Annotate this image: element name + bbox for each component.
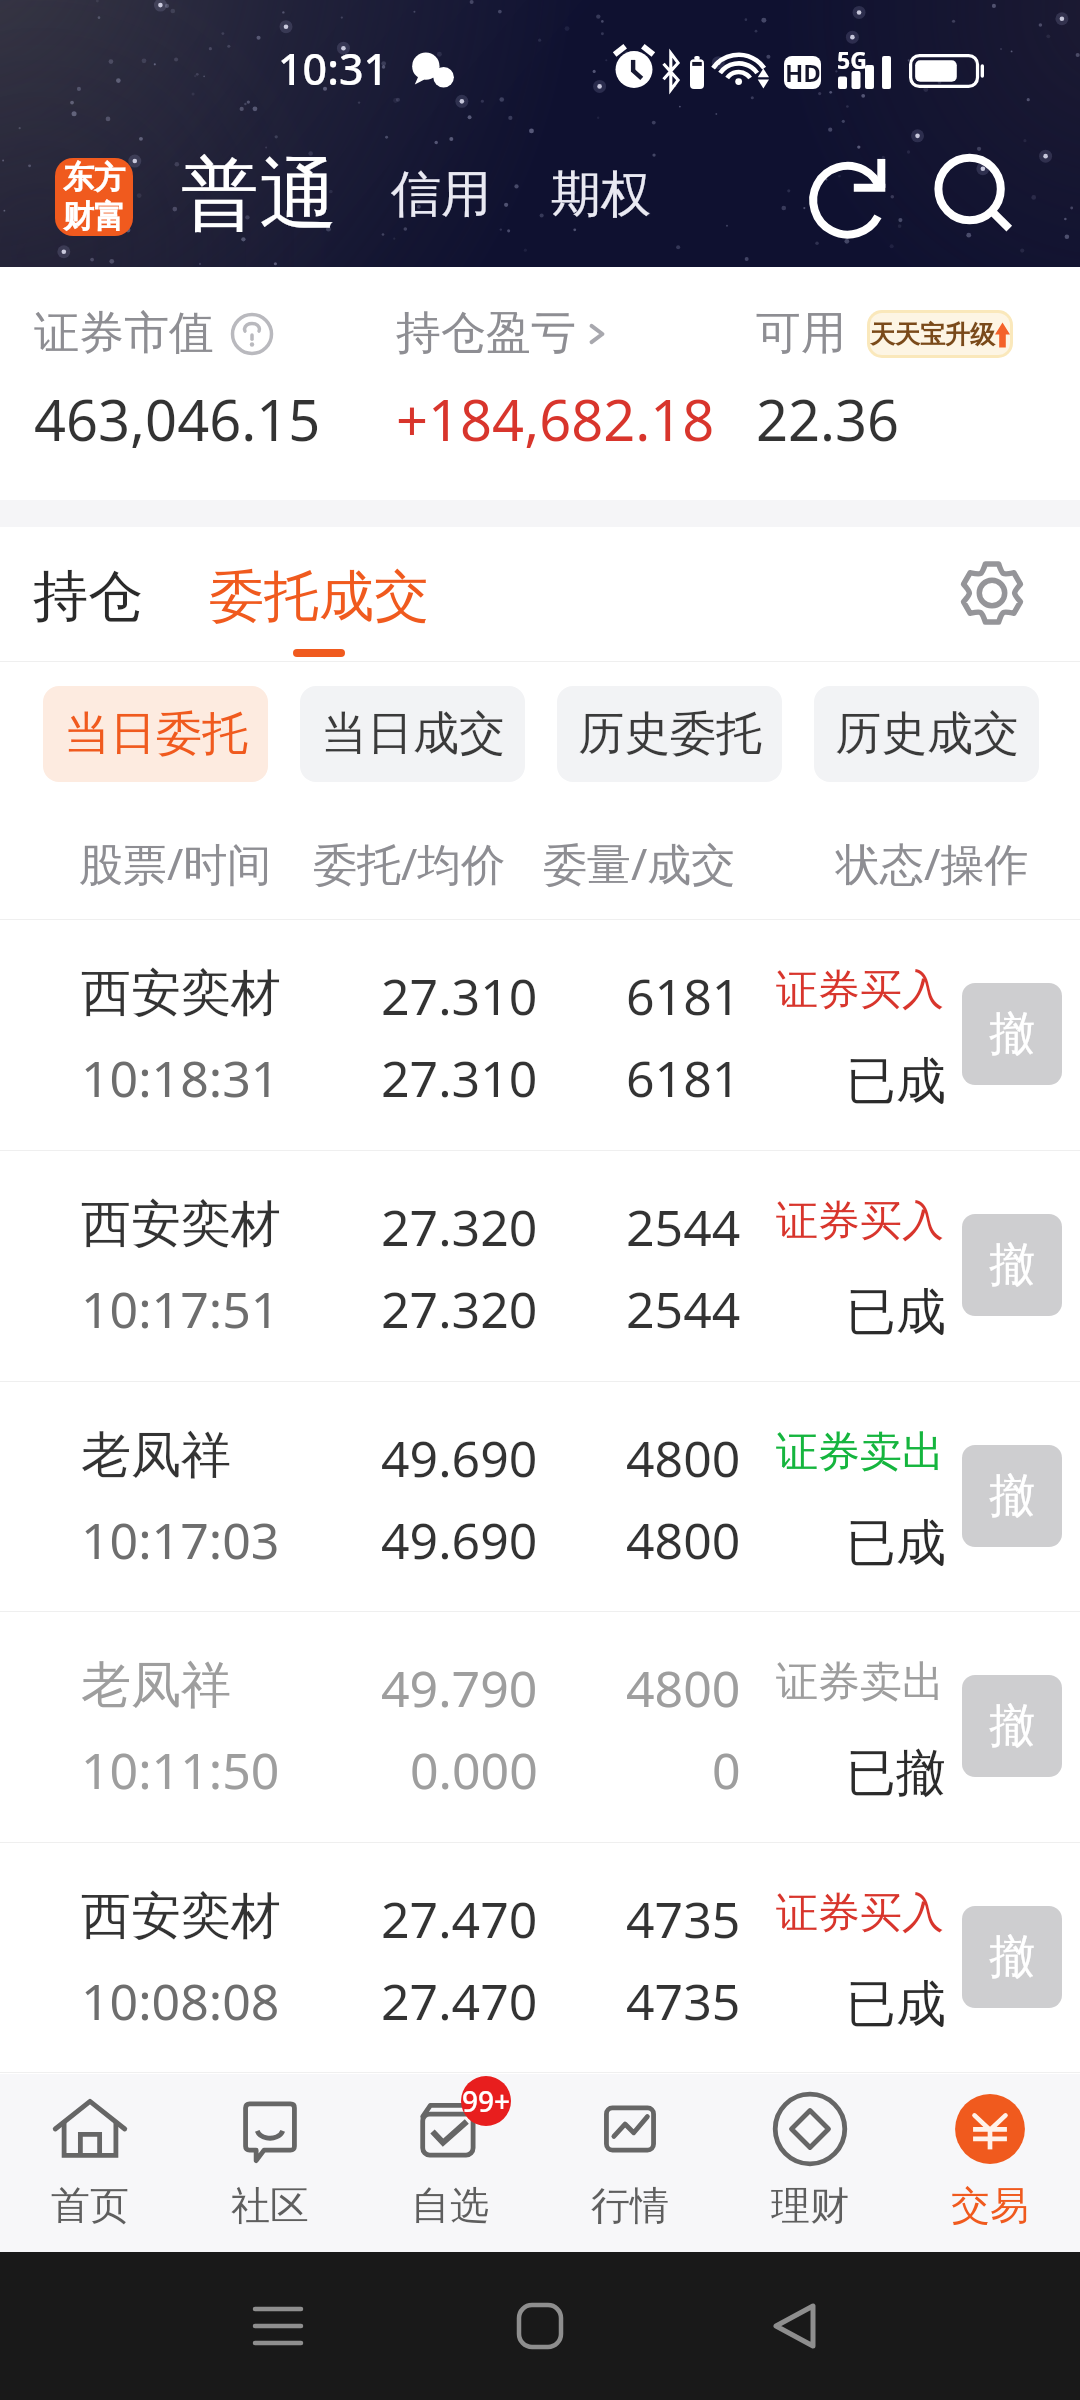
button[interactable]: 老凤祥 bbox=[0, 1382, 1080, 1612]
button[interactable]: 持仓 bbox=[32, 527, 144, 662]
staticText: 10:08:08 bbox=[81, 1967, 280, 2035]
button[interactable]: 撤单 bbox=[962, 1675, 1062, 1777]
staticText: 463,046.15 bbox=[34, 381, 321, 457]
staticText: 27.470 bbox=[381, 1967, 538, 2035]
staticText: 撤 bbox=[989, 1928, 1035, 1986]
staticText: 自选 bbox=[411, 2181, 489, 2230]
button[interactable]: 社区 bbox=[180, 2074, 360, 2252]
staticText: 4800 bbox=[626, 1424, 741, 1492]
staticText: 4800 bbox=[626, 1654, 741, 1722]
staticText: 持仓 bbox=[33, 562, 143, 631]
staticText: 0 bbox=[712, 1736, 741, 1804]
staticText: 西安奕材 bbox=[81, 1193, 281, 1256]
staticText: 10:18:31 bbox=[81, 1044, 280, 1112]
button[interactable]: 撤单 bbox=[962, 1214, 1062, 1316]
button[interactable]: 首页 bbox=[0, 2074, 180, 2252]
button[interactable]: 期权 bbox=[545, 122, 657, 267]
button[interactable]: 委托成交 bbox=[208, 527, 430, 662]
button[interactable]: 历史成交 bbox=[814, 686, 1039, 782]
staticText: 4735 bbox=[626, 1885, 741, 1953]
staticText: 股票/时间 bbox=[79, 833, 272, 893]
staticText: 99+ bbox=[462, 2082, 511, 2120]
staticText: 10:17:51 bbox=[81, 1275, 280, 1343]
button[interactable]: Refresh bbox=[790, 122, 910, 267]
button[interactable]: 证券市值 bbox=[34, 305, 274, 362]
staticText: 49.790 bbox=[381, 1654, 538, 1722]
button[interactable]: 99+ bbox=[360, 2074, 540, 2252]
button[interactable]: Home bbox=[490, 2252, 590, 2400]
staticText: 委量/成交 bbox=[543, 833, 736, 893]
staticText: 撤 bbox=[989, 1236, 1035, 1294]
button[interactable]: East Money bbox=[55, 158, 133, 236]
staticText: 西安奕材 bbox=[81, 1885, 281, 1948]
button[interactable]: 撤单 bbox=[962, 1445, 1062, 1547]
staticText: 27.320 bbox=[381, 1193, 538, 1261]
staticText: 交易 bbox=[951, 2181, 1029, 2230]
button[interactable]: Settings bbox=[946, 527, 1038, 662]
staticText: 东方 bbox=[63, 158, 125, 197]
button[interactable]: 普通 bbox=[170, 122, 348, 267]
staticText: 委托/均价 bbox=[313, 833, 506, 893]
staticText: 已成 bbox=[846, 1973, 946, 2036]
staticText: 4800 bbox=[626, 1506, 741, 1574]
staticText: 撤 bbox=[989, 1697, 1035, 1755]
staticText: 已成 bbox=[846, 1281, 946, 1344]
staticText: 已撤 bbox=[846, 1742, 946, 1805]
staticText: 10:31 bbox=[278, 39, 389, 98]
staticText: 49.690 bbox=[381, 1506, 538, 1574]
button[interactable]: 西安奕材 bbox=[0, 920, 1080, 1151]
staticText: 已成 bbox=[846, 1050, 946, 1113]
button[interactable]: 行情 bbox=[540, 2074, 720, 2252]
staticText: 理财 bbox=[771, 2181, 849, 2230]
staticText: 当日委托 bbox=[64, 705, 248, 763]
button[interactable]: 当日委托 bbox=[43, 686, 268, 782]
staticText: 证券买入 bbox=[776, 1887, 944, 1940]
staticText: 社区 bbox=[231, 2181, 309, 2230]
staticText: 证券卖出 bbox=[776, 1426, 944, 1479]
button[interactable]: 老凤祥 bbox=[0, 1612, 1080, 1843]
button[interactable]: 理财 bbox=[720, 2074, 900, 2252]
button[interactable]: 交易 bbox=[900, 2074, 1080, 2252]
staticText: 撤 bbox=[989, 1005, 1035, 1063]
staticText: 已成 bbox=[846, 1512, 946, 1575]
staticText: 老凤祥 bbox=[81, 1654, 231, 1717]
button[interactable]: 历史委托 bbox=[557, 686, 782, 782]
staticText: 证券市值 bbox=[34, 305, 214, 362]
button[interactable]: Recents bbox=[228, 2252, 328, 2400]
button[interactable]: 撤单 bbox=[962, 983, 1062, 1085]
button[interactable]: 当日成交 bbox=[300, 686, 525, 782]
button[interactable]: 西安奕材 bbox=[0, 1151, 1080, 1382]
button[interactable]: 信用 bbox=[385, 122, 497, 267]
staticText: 2544 bbox=[626, 1193, 741, 1261]
staticText: 普通 bbox=[181, 146, 337, 244]
button[interactable]: Search bbox=[916, 122, 1036, 267]
staticText: HD bbox=[785, 56, 821, 89]
staticText: 27.310 bbox=[381, 962, 538, 1030]
staticText: 6181 bbox=[626, 962, 741, 1030]
staticText: 天天宝升级 bbox=[870, 319, 995, 350]
staticText: 撤 bbox=[989, 1467, 1035, 1525]
button[interactable]: 持仓盈亏 bbox=[396, 305, 614, 362]
staticText: 历史委托 bbox=[578, 705, 762, 763]
staticText: 信用 bbox=[391, 163, 491, 226]
staticText: 6181 bbox=[626, 1044, 741, 1112]
staticText: 证券买入 bbox=[776, 1195, 944, 1248]
button[interactable]: Back bbox=[744, 2252, 844, 2400]
staticText: 财富 bbox=[63, 197, 125, 236]
button[interactable]: 天天宝升级 bbox=[870, 313, 1010, 355]
staticText: 状态/操作 bbox=[836, 833, 1029, 893]
staticText: 老凤祥 bbox=[81, 1424, 231, 1487]
staticText: 27.310 bbox=[381, 1044, 538, 1112]
staticText: 4735 bbox=[626, 1967, 741, 2035]
staticText: 证券买入 bbox=[776, 964, 944, 1017]
button[interactable]: 西安奕材 bbox=[0, 1843, 1080, 2073]
staticText: 22.36 bbox=[756, 381, 900, 457]
staticText: 0.000 bbox=[410, 1736, 538, 1804]
staticText: 2544 bbox=[626, 1275, 741, 1343]
button[interactable]: 撤单 bbox=[962, 1906, 1062, 2008]
staticText: 可用 bbox=[756, 305, 846, 362]
staticText: 27.320 bbox=[381, 1275, 538, 1343]
staticText: 当日成交 bbox=[321, 705, 505, 763]
staticText: 行情 bbox=[591, 2181, 669, 2230]
staticText: +184,682.18 bbox=[396, 381, 715, 457]
